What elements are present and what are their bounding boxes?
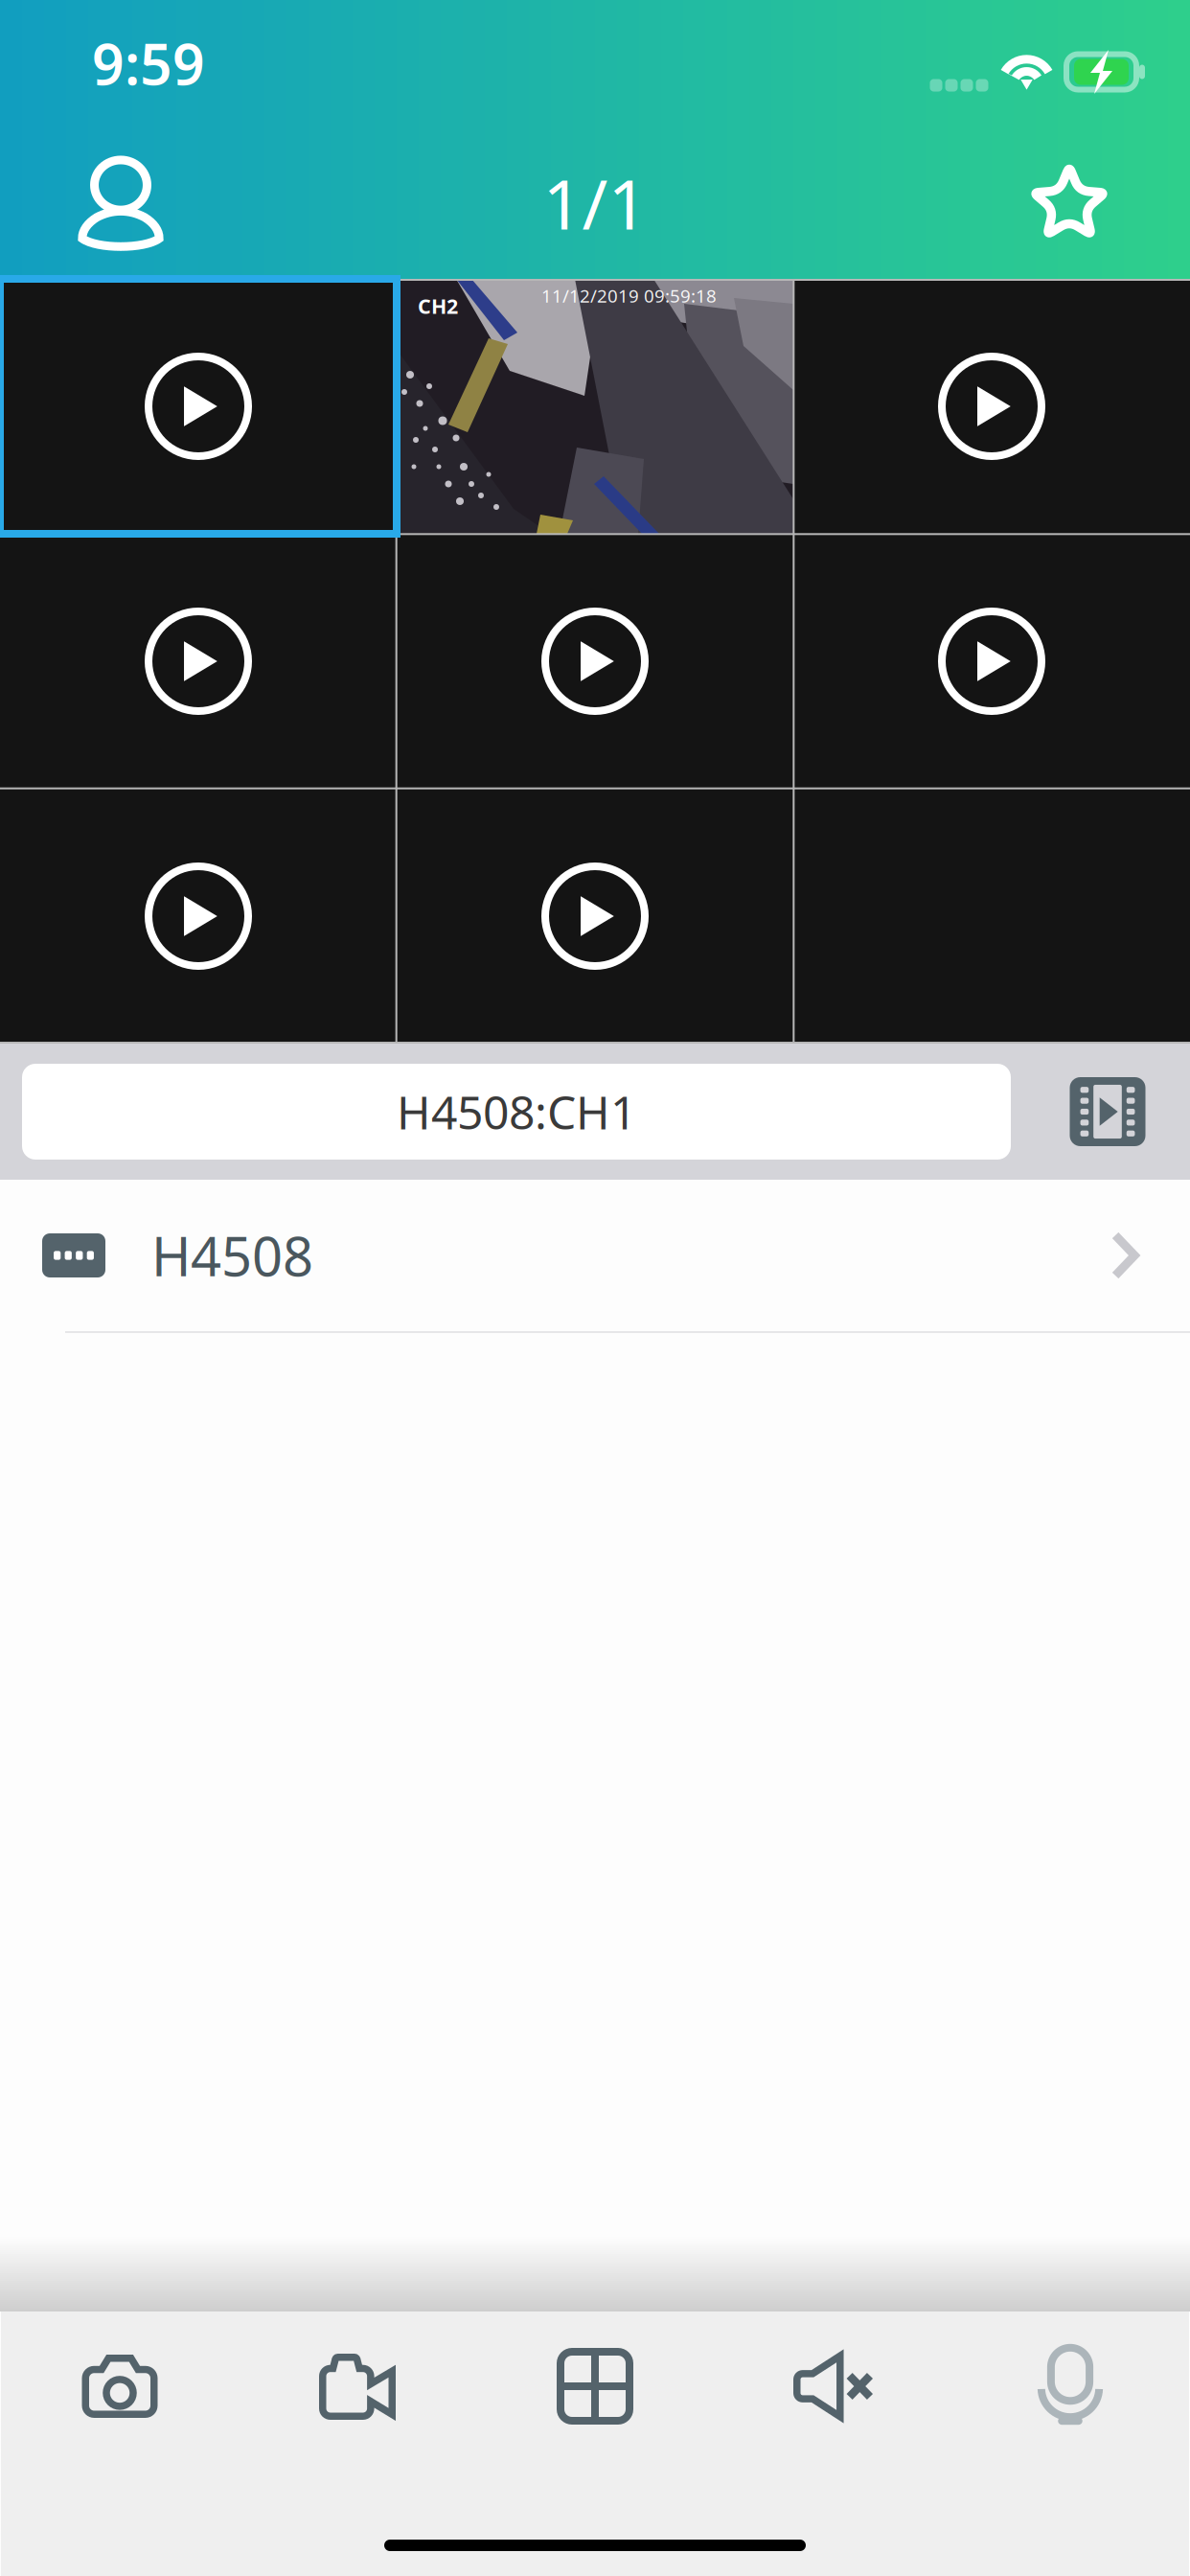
button[interactable]: Snapshot bbox=[1, 2329, 239, 2444]
staticText: H4508:CH1 bbox=[397, 1081, 636, 1142]
button[interactable]: Mute bbox=[714, 2329, 951, 2444]
staticText: CH2 bbox=[418, 292, 458, 319]
button[interactable]: Playback bbox=[1041, 1064, 1175, 1160]
button[interactable]: H4508 bbox=[0, 1180, 1190, 1331]
button[interactable]: Channel 4 bbox=[0, 534, 397, 789]
button[interactable]: Talk bbox=[951, 2329, 1189, 2444]
button[interactable]: Channel 1 bbox=[0, 279, 397, 534]
button[interactable]: Channel 7 bbox=[0, 789, 397, 1044]
staticText: 11/12/2019 09:59:18 bbox=[541, 284, 717, 307]
button[interactable]: Channel 6 bbox=[793, 534, 1190, 789]
button[interactable]: Account bbox=[42, 126, 199, 279]
button[interactable]: Favourites bbox=[991, 126, 1148, 279]
staticText: 9:59 bbox=[92, 26, 205, 101]
staticText: H4508 bbox=[151, 1220, 313, 1291]
staticText: 1/1 bbox=[543, 157, 647, 248]
button[interactable]: H4508:CH1 bbox=[22, 1064, 1011, 1160]
button[interactable]: Channel 8 bbox=[397, 789, 793, 1044]
button[interactable]: Layout bbox=[476, 2329, 714, 2444]
button[interactable]: Record bbox=[239, 2329, 476, 2444]
button[interactable]: Channel 5 bbox=[397, 534, 793, 789]
button[interactable]: Channel 3 bbox=[793, 279, 1190, 534]
button[interactable]: Channel 2 live bbox=[397, 279, 793, 534]
